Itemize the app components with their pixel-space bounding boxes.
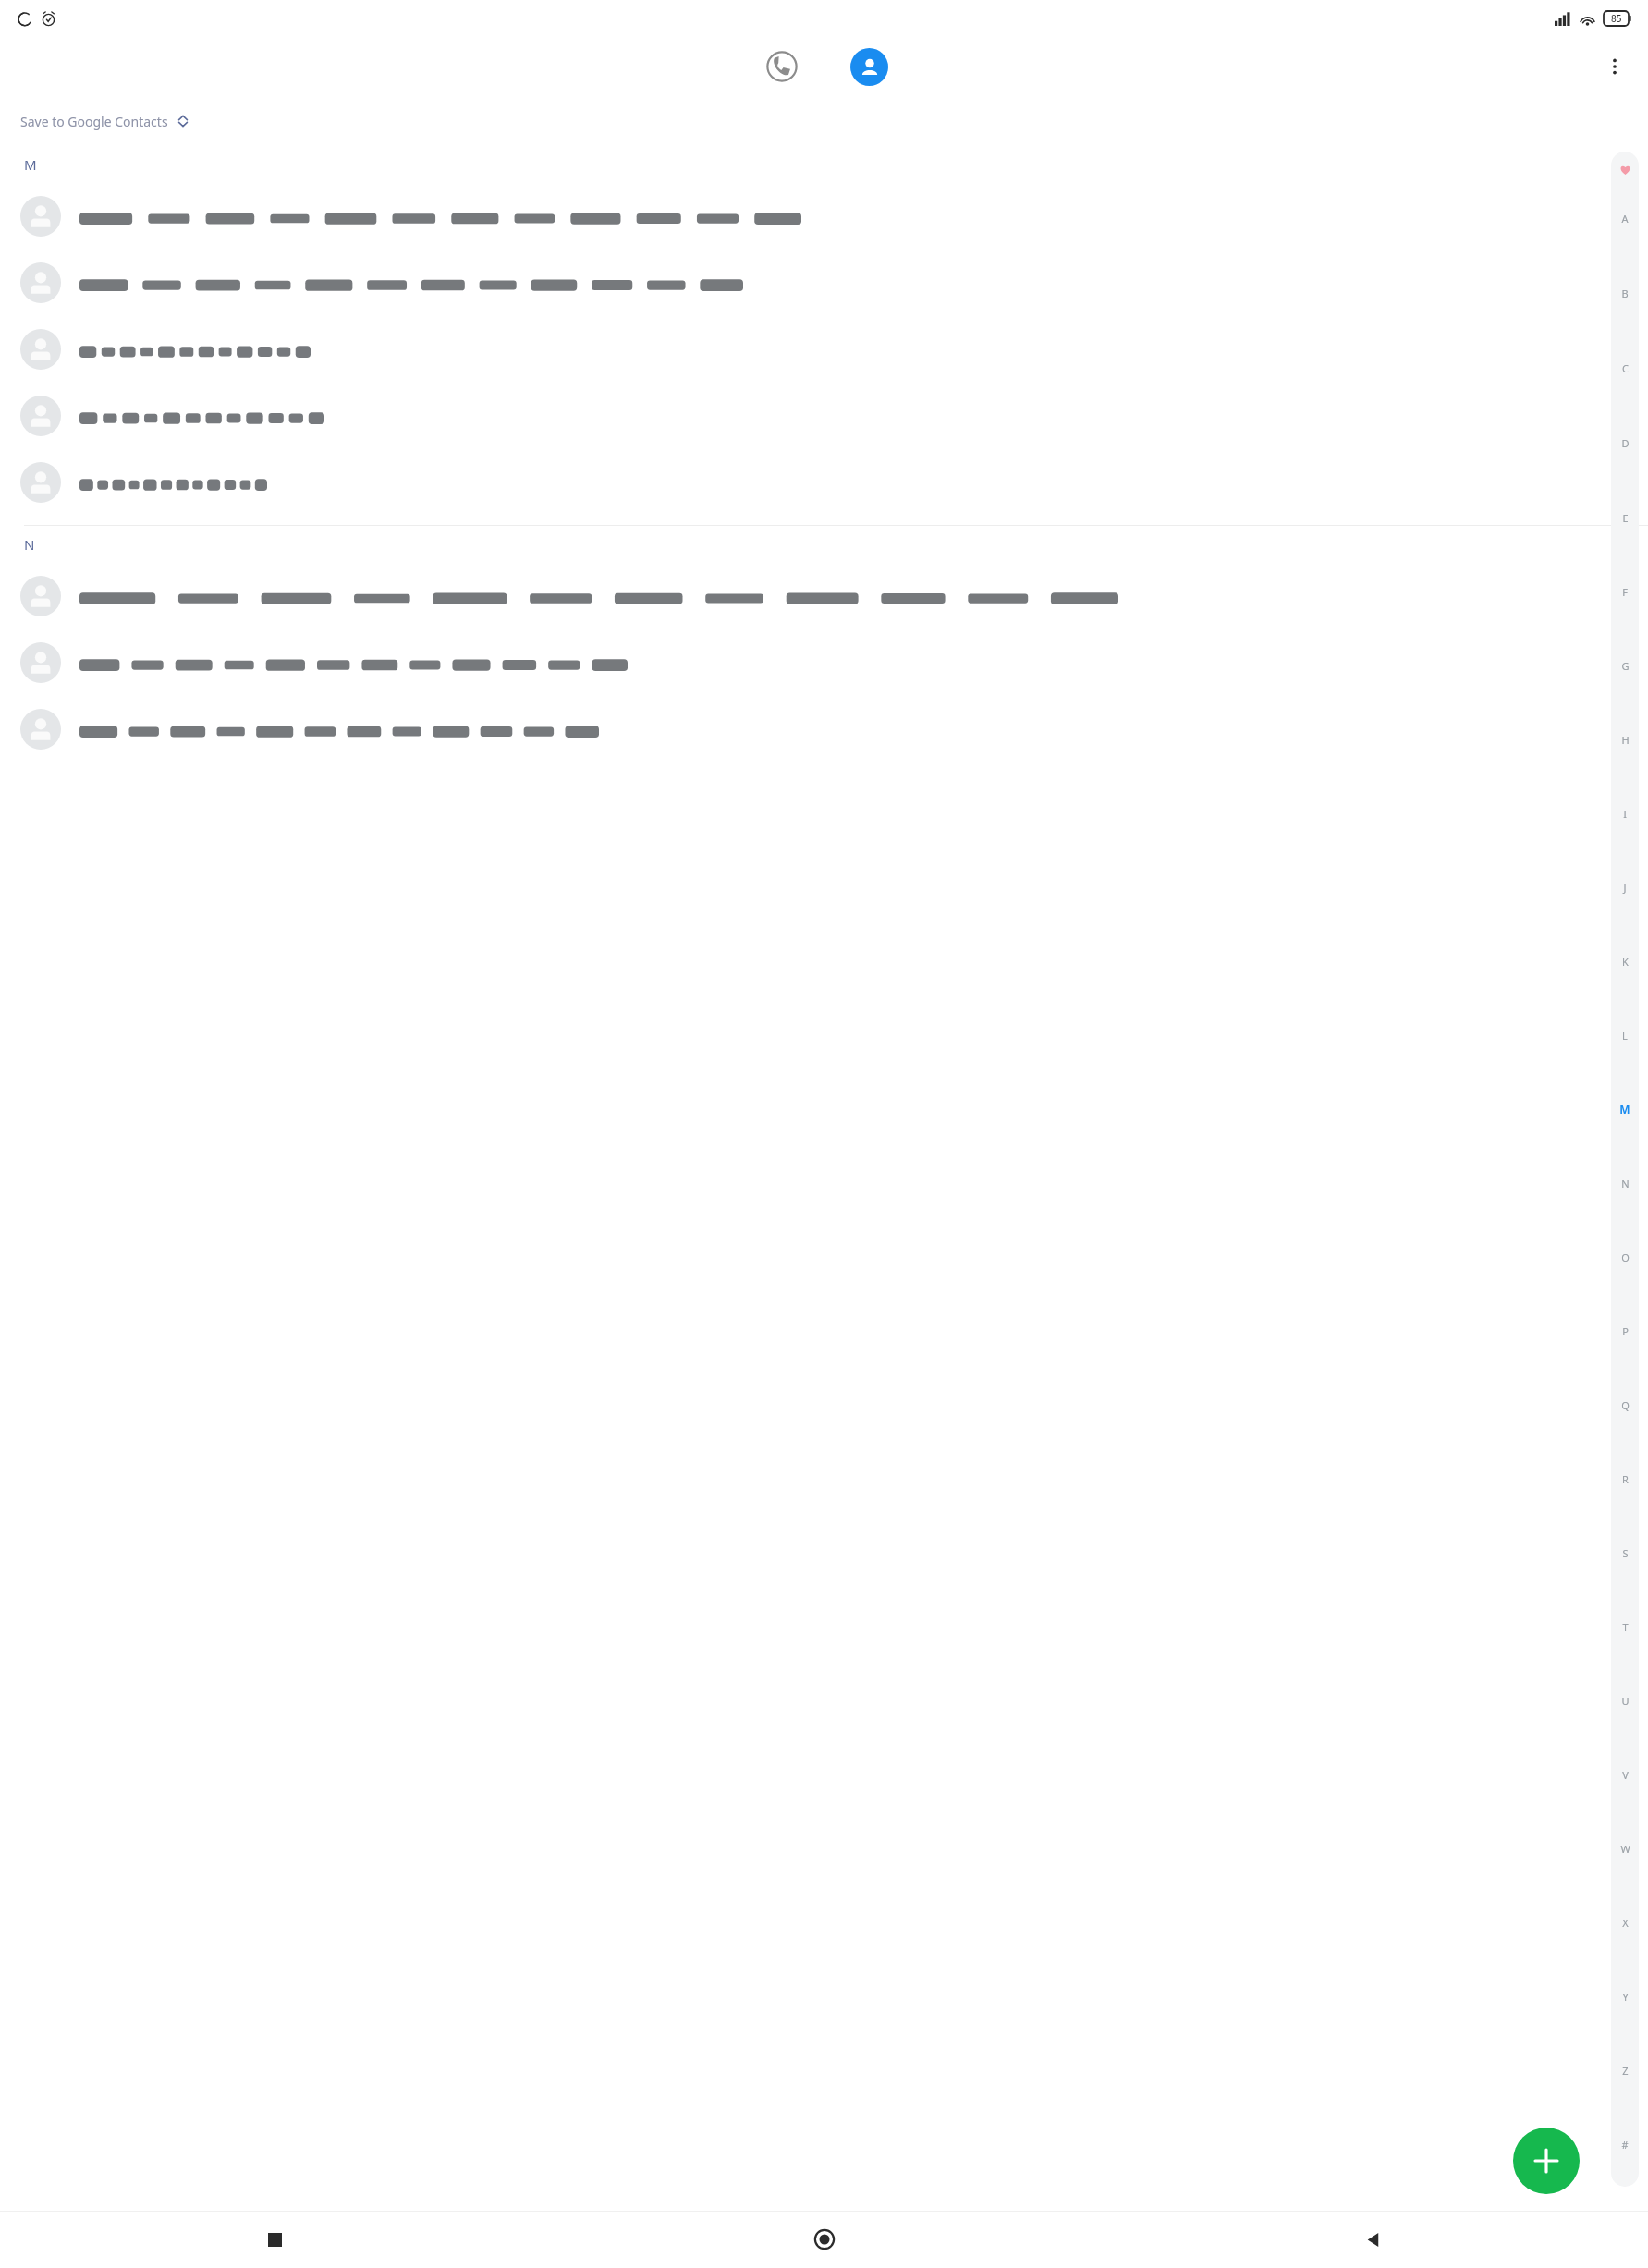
button[interactable]: A <box>1611 181 1639 256</box>
button[interactable] <box>0 316 1648 383</box>
staticText: B <box>1621 287 1629 300</box>
staticText: # <box>1621 2138 1629 2152</box>
staticText: O <box>1621 1250 1630 1264</box>
button[interactable]: E <box>1611 481 1639 555</box>
button[interactable]: U <box>1611 1664 1639 1738</box>
button[interactable]: Contacts <box>847 44 891 89</box>
staticText: D <box>1621 436 1630 450</box>
button[interactable] <box>0 383 1648 449</box>
button[interactable]: F <box>1611 555 1639 628</box>
button[interactable] <box>0 696 1648 762</box>
staticText: E <box>1622 511 1629 525</box>
button[interactable]: Q <box>1611 1368 1639 1442</box>
button[interactable]: Home <box>550 2211 1099 2268</box>
button[interactable]: Save to Google Contacts <box>0 96 1648 146</box>
staticText: A <box>1621 212 1629 226</box>
staticText: U <box>1621 1694 1630 1708</box>
button[interactable]: J <box>1611 850 1639 924</box>
staticText: C <box>1622 361 1629 375</box>
staticText: W <box>1620 1842 1630 1856</box>
button[interactable] <box>0 629 1648 696</box>
staticText: 85 <box>1611 12 1622 25</box>
button[interactable]: P <box>1611 1294 1639 1368</box>
staticText: S <box>1622 1546 1629 1560</box>
button[interactable]: Recent apps <box>0 2211 550 2268</box>
staticText: H <box>1621 733 1630 747</box>
staticText: T <box>1622 1620 1629 1634</box>
button[interactable]: Z <box>1611 2033 1639 2107</box>
button[interactable]: Y <box>1611 1959 1639 2033</box>
button[interactable]: Add contact <box>1513 2128 1580 2194</box>
button[interactable]: D <box>1611 406 1639 481</box>
button[interactable]: V <box>1611 1738 1639 1811</box>
button[interactable]: Dialer <box>760 44 804 89</box>
button[interactable]: K <box>1611 924 1639 998</box>
button[interactable]: B <box>1611 256 1639 331</box>
button[interactable] <box>0 250 1648 316</box>
staticText: Save to Google Contacts <box>20 113 168 130</box>
button[interactable] <box>0 183 1648 250</box>
button[interactable] <box>0 449 1648 516</box>
button[interactable]: Favourites <box>1613 157 1637 181</box>
staticText: I <box>1623 807 1627 821</box>
button[interactable]: O <box>1611 1220 1639 1294</box>
staticText: M <box>24 155 37 174</box>
button[interactable]: N <box>1611 1146 1639 1220</box>
staticText: Z <box>1622 2064 1629 2078</box>
button[interactable]: M <box>1611 1072 1639 1146</box>
button[interactable]: I <box>1611 776 1639 850</box>
button[interactable]: H <box>1611 702 1639 776</box>
staticText: Y <box>1622 1990 1629 2004</box>
staticText: M <box>1619 1102 1630 1116</box>
staticText: G <box>1621 659 1630 673</box>
button[interactable]: L <box>1611 998 1639 1072</box>
button[interactable]: More options <box>1594 46 1635 87</box>
button[interactable]: G <box>1611 628 1639 702</box>
staticText: J <box>1623 881 1627 895</box>
button[interactable]: # <box>1611 2107 1639 2181</box>
staticText: N <box>1621 1177 1630 1190</box>
staticText: P <box>1622 1324 1629 1338</box>
staticText: R <box>1622 1472 1629 1486</box>
button[interactable]: S <box>1611 1516 1639 1590</box>
staticText: N <box>24 535 35 554</box>
staticText: F <box>1622 585 1628 599</box>
staticText: K <box>1622 955 1629 969</box>
button[interactable]: W <box>1611 1811 1639 1885</box>
staticText: Q <box>1621 1398 1630 1412</box>
staticText: X <box>1622 1916 1629 1930</box>
button[interactable] <box>0 563 1648 629</box>
staticText: V <box>1622 1768 1629 1782</box>
staticText: L <box>1622 1029 1628 1043</box>
button[interactable]: C <box>1611 331 1639 406</box>
button[interactable]: X <box>1611 1885 1639 1959</box>
button[interactable]: Back <box>1099 2211 1648 2268</box>
button[interactable]: T <box>1611 1590 1639 1664</box>
button[interactable]: R <box>1611 1442 1639 1516</box>
